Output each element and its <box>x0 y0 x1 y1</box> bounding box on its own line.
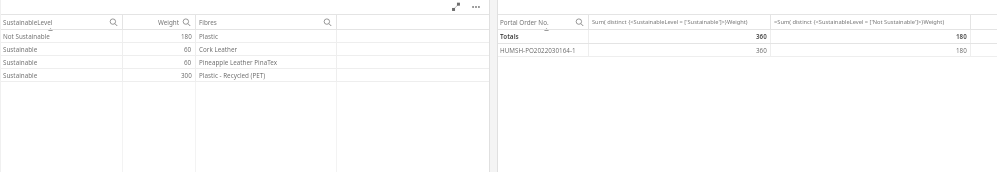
button[interactable]: Weight <box>123 15 195 29</box>
button[interactable]: Search in column <box>108 17 119 28</box>
staticText: Plastic - Recycled (PET) <box>199 71 266 80</box>
staticText: =Sum( distinct {<SustainableLevel = ['No… <box>774 18 945 26</box>
button[interactable]: =Sum( distinct {<SustainableLevel = ['No… <box>771 15 970 29</box>
button[interactable]: SustainableLevel <box>0 15 122 29</box>
staticText: 60 <box>184 45 192 54</box>
button[interactable]: Sustainable <box>0 56 490 68</box>
staticText: 180 <box>956 46 967 55</box>
button[interactable]: HUMSH-PO2022030164-1 <box>497 44 997 56</box>
button[interactable]: Sustainable <box>0 43 490 55</box>
staticText: Sum( distinct {<SustainableLevel = ['Sus… <box>592 18 748 26</box>
staticText: Not Sustainable <box>3 32 50 41</box>
button[interactable]: Portal Order No. <box>497 15 588 29</box>
button[interactable]: Search in column <box>181 17 192 28</box>
button[interactable]: Search in column <box>574 17 585 28</box>
staticText: 180 <box>181 32 192 41</box>
staticText: Pineapple Leather PinaTex <box>199 58 277 67</box>
button[interactable]: Sum( distinct {<SustainableLevel = ['Sus… <box>589 15 770 29</box>
staticText: Plastic <box>199 32 218 41</box>
button[interactable]: Not Sustainable <box>0 30 490 42</box>
staticText: 300 <box>181 71 192 80</box>
staticText: 360 <box>756 46 767 55</box>
staticText: HUMSH-PO2022030164-1 <box>500 46 576 55</box>
staticText: Cork Leather <box>199 45 238 54</box>
staticText: SustainableLevel <box>3 18 53 27</box>
button[interactable]: Expand to full screen <box>450 1 462 13</box>
staticText: Fibres <box>199 18 217 27</box>
button[interactable]: Totals <box>497 30 997 43</box>
button[interactable]: Search in column <box>322 17 333 28</box>
staticText: Weight <box>158 18 179 27</box>
staticText: Sustainable <box>3 58 38 67</box>
staticText: 180 <box>956 32 967 41</box>
staticText: 60 <box>184 58 192 67</box>
button[interactable]: Fibres <box>196 15 336 29</box>
staticText: 360 <box>756 32 767 41</box>
staticText: Sustainable <box>3 45 38 54</box>
staticText: Sustainable <box>3 71 38 80</box>
staticText: Portal Order No. <box>500 18 549 27</box>
button[interactable]: More options <box>469 1 483 13</box>
button[interactable]: Sustainable <box>0 69 490 81</box>
staticText: Totals <box>500 32 519 41</box>
